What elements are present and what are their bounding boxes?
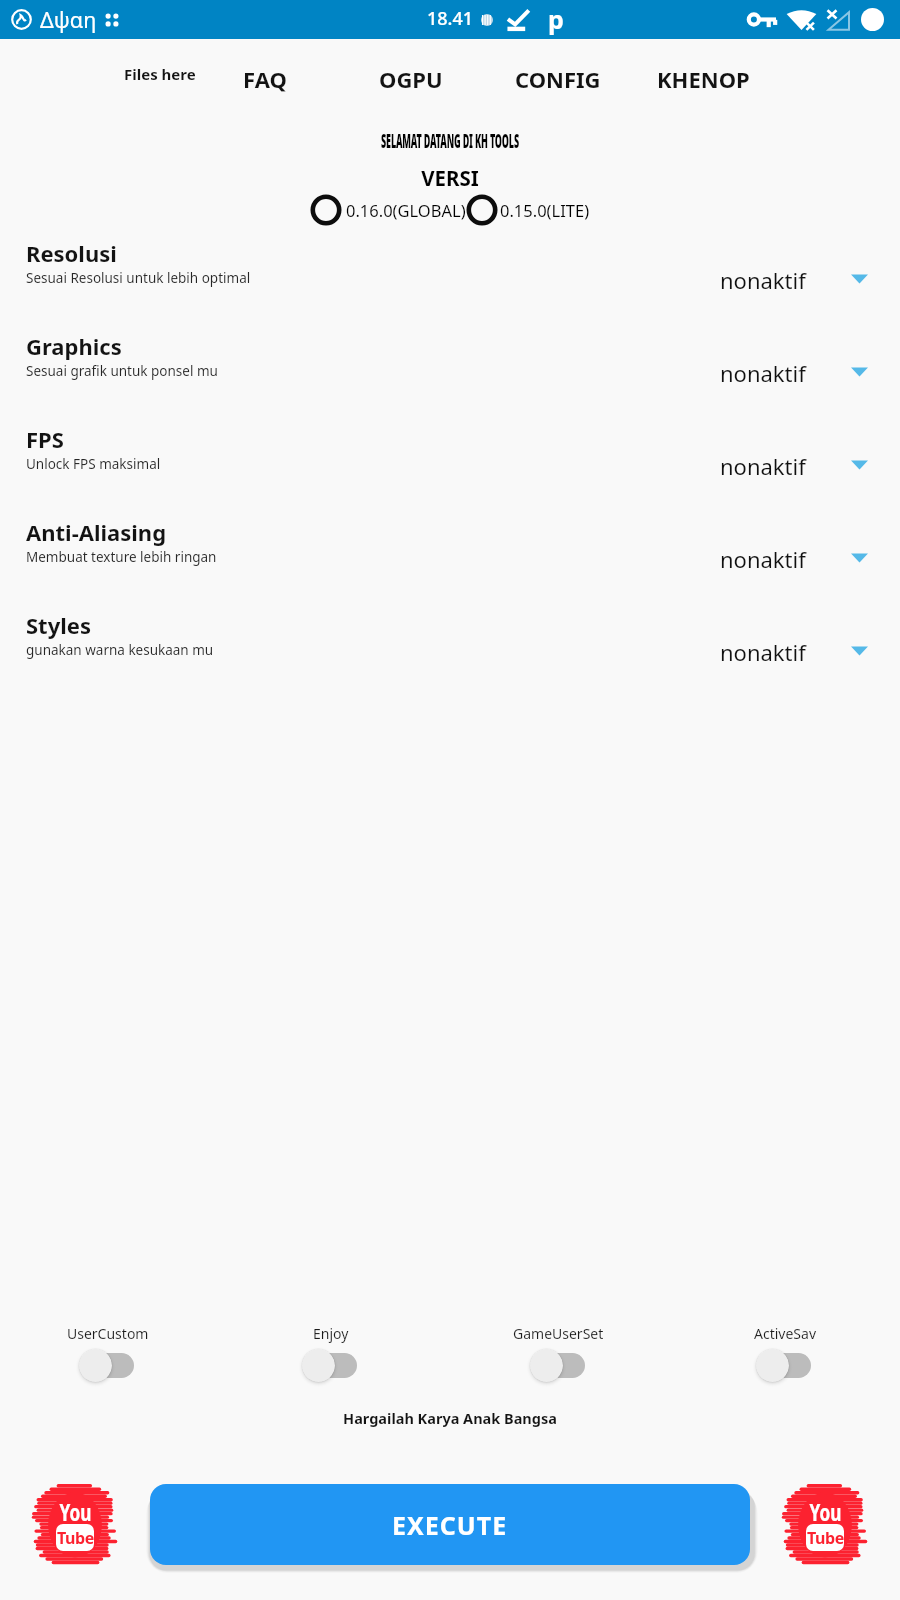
button[interactable]: Files here [124, 58, 196, 90]
button[interactable]: ActiveSav [715, 1324, 855, 1383]
button[interactable]: OGPU [379, 58, 443, 100]
staticText: Resolusi [26, 238, 117, 268]
staticText: Enjoy [313, 1324, 349, 1343]
staticText: nonaktif [720, 544, 806, 574]
staticText: Tube [57, 1527, 94, 1549]
staticText: nonaktif [720, 451, 806, 481]
button[interactable]: Anti-Aliasing [0, 519, 900, 612]
button[interactable]: YouTube [780, 1480, 870, 1570]
staticText: Δψαη [40, 5, 97, 34]
button[interactable]: GameUserSet [488, 1324, 628, 1383]
staticText: KHENOP [657, 64, 750, 94]
button[interactable]: Resolusi [0, 240, 900, 333]
button[interactable]: YouTube [30, 1480, 120, 1570]
button[interactable]: 0.16.0(GLOBAL) [310, 194, 466, 226]
staticText: Styles [26, 610, 91, 640]
staticText: Files here [124, 64, 196, 84]
staticText: You [809, 1498, 841, 1529]
staticText: nonaktif [720, 637, 806, 667]
staticText: Tube [807, 1527, 844, 1549]
button[interactable]: 0.15.0(LITE) [466, 194, 590, 226]
staticText: UserCustom [67, 1324, 149, 1343]
staticText: You [59, 1498, 91, 1529]
staticText: Sesuai grafik untuk ponsel mu [26, 362, 218, 380]
staticText: 0.15.0(LITE) [500, 199, 590, 221]
staticText: Hargailah Karya Anak Bangsa [0, 1408, 900, 1428]
staticText: GameUserSet [513, 1324, 604, 1343]
staticText: Sesuai Resolusi untuk lebih optimal [26, 269, 251, 287]
staticText: FAQ [243, 64, 287, 94]
button[interactable]: Styles [0, 612, 900, 705]
staticText: gunakan warna kesukaan mu [26, 641, 214, 659]
staticText: nonaktif [720, 358, 806, 388]
staticText: Graphics [26, 331, 122, 361]
button[interactable]: Enjoy [261, 1324, 401, 1383]
staticText: VERSI [0, 164, 900, 192]
staticText: CONFIG [515, 64, 601, 94]
staticText: FPS [26, 424, 64, 454]
button[interactable]: FAQ [243, 58, 287, 100]
staticText: SELAMAT DATANG DI KH TOOLS [381, 127, 519, 153]
staticText: Unlock FPS maksimal [26, 455, 161, 473]
staticText: 0.16.0(GLOBAL) [346, 199, 466, 221]
button[interactable]: UserCustom [38, 1324, 178, 1383]
staticText: nonaktif [720, 265, 806, 295]
button[interactable]: CONFIG [515, 58, 601, 100]
staticText: ActiveSav [754, 1324, 816, 1343]
button[interactable]: KHENOP [657, 58, 750, 100]
button[interactable]: Graphics [0, 333, 900, 426]
staticText: p [548, 2, 564, 36]
staticText: Membuat texture lebih ringan [26, 548, 217, 566]
button[interactable]: FPS [0, 426, 900, 519]
staticText: OGPU [379, 64, 443, 94]
staticText: Anti-Aliasing [26, 517, 167, 547]
button[interactable]: EXECUTE [150, 1484, 750, 1565]
staticText: 18.41 [427, 6, 474, 31]
staticText: EXECUTE [392, 1508, 508, 1542]
